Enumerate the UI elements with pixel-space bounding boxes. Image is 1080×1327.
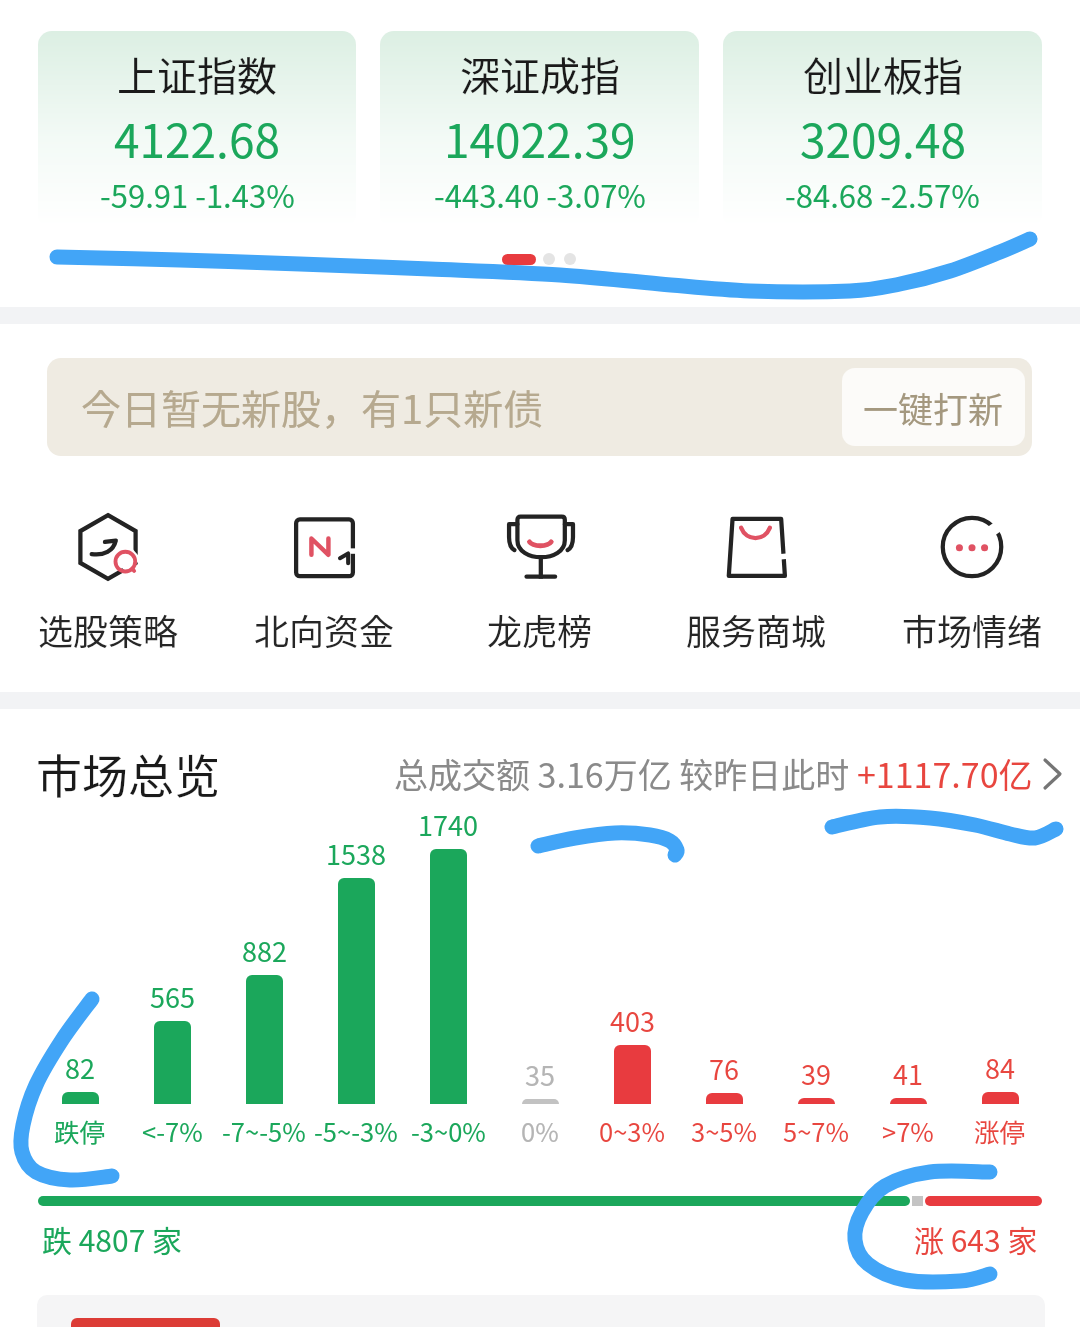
staticText: 1538 <box>326 834 386 873</box>
staticText: 5~7% <box>783 1112 849 1149</box>
staticText: 深证成指 <box>460 45 620 103</box>
staticText: 跌停 <box>54 1112 106 1149</box>
staticText: 882 <box>242 931 287 970</box>
staticText: 龙虎榜 <box>487 604 593 655</box>
staticText: +1117.70亿 <box>857 749 1033 798</box>
staticText: 总成交额 3.16万亿 较昨日此时 <box>394 749 857 798</box>
staticText: 今日暂无新股，有1只新债 <box>81 378 544 436</box>
staticText: 跌 4807 家 <box>42 1217 183 1260</box>
staticText: 选股策略 <box>38 604 179 655</box>
staticText: 1740 <box>418 805 478 844</box>
staticText: 0% <box>521 1112 559 1149</box>
button[interactable]: 选股策略 <box>0 513 216 655</box>
staticText: 76 <box>709 1049 739 1088</box>
button[interactable]: 一键打新 <box>842 368 1025 446</box>
button[interactable]: 深证成指 <box>380 31 699 227</box>
staticText: 3209.48 <box>800 105 966 172</box>
staticText: 一键打新 <box>863 382 1004 433</box>
button[interactable]: 服务商城 <box>648 513 864 655</box>
button[interactable]: 创业板指 <box>723 31 1042 227</box>
staticText: 上证指数 <box>117 45 277 103</box>
button[interactable]: 市场情绪 <box>864 513 1080 655</box>
staticText: -59.91 -1.43% <box>100 172 295 217</box>
staticText: 市场总览 <box>36 740 220 807</box>
button[interactable]: 市场总览 <box>36 740 1046 807</box>
staticText: >7% <box>882 1112 934 1149</box>
staticText: 82 <box>65 1048 95 1087</box>
staticText: -443.40 -3.07% <box>434 172 646 217</box>
button[interactable]: 今日暂无新股，有1只新债 <box>47 358 1032 456</box>
staticText: 14022.39 <box>444 105 636 172</box>
staticText: 涨停 <box>974 1112 1026 1149</box>
staticText: 市场情绪 <box>902 604 1043 655</box>
other: 查看市场总览 <box>1043 758 1063 790</box>
staticText: -7~-5% <box>222 1112 306 1149</box>
staticText: 403 <box>610 1001 655 1040</box>
button[interactable] <box>37 1295 1045 1327</box>
staticText: 35 <box>525 1055 555 1094</box>
button[interactable]: 总成交额 3.16万亿 较昨日此时 <box>394 749 1063 798</box>
staticText: 服务商城 <box>686 604 827 655</box>
staticText: 39 <box>801 1054 831 1093</box>
staticText: 84 <box>985 1048 1015 1087</box>
staticText: 北向资金 <box>254 604 395 655</box>
staticText: 565 <box>150 977 195 1016</box>
staticText: 涨 643 家 <box>914 1217 1038 1260</box>
button[interactable]: 北向资金 <box>216 513 432 655</box>
staticText: 41 <box>893 1054 923 1093</box>
staticText: -3~0% <box>411 1112 486 1149</box>
staticText: -5~-3% <box>314 1112 398 1149</box>
staticText: 创业板指 <box>803 45 963 103</box>
staticText: 4122.68 <box>114 105 280 172</box>
button[interactable]: 上证指数 <box>38 31 356 227</box>
staticText: -84.68 -2.57% <box>785 172 980 217</box>
staticText: <-7% <box>142 1112 203 1149</box>
staticText: 3~5% <box>691 1112 757 1149</box>
staticText: 0~3% <box>599 1112 665 1149</box>
button[interactable]: 龙虎榜 <box>432 513 648 655</box>
